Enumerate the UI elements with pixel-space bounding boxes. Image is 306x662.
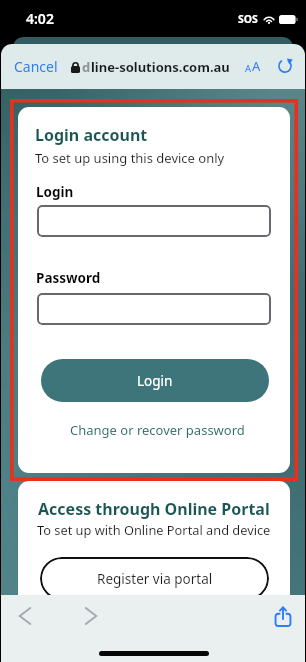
button[interactable]: Register via portal (40, 557, 269, 595)
staticText: 4:02 (26, 9, 54, 28)
staticText: Password (36, 269, 101, 287)
staticText: A (252, 57, 261, 75)
staticText: To set up using this device only (35, 149, 225, 167)
staticText: A (245, 62, 252, 75)
button[interactable]: Forward (72, 597, 110, 635)
staticText: Access through Online Portal (38, 498, 270, 520)
button[interactable]: Cancel (9, 52, 63, 80)
staticText: Cancel (14, 57, 58, 76)
button[interactable] (37, 205, 271, 237)
staticText: Login account (35, 124, 148, 146)
button[interactable]: Login (41, 359, 269, 402)
button[interactable]: Reload page (273, 54, 297, 78)
button[interactable] (37, 293, 271, 325)
staticText: Login (36, 183, 74, 201)
staticText: SOS (238, 12, 258, 26)
button[interactable]: Text size options (241, 54, 265, 78)
staticText: d (82, 58, 91, 76)
button[interactable]: Change or recover password (21, 418, 290, 442)
staticText: To set up with Online Portal and device (37, 521, 271, 538)
staticText: Change or recover password (70, 421, 245, 439)
button[interactable]: Back (6, 597, 44, 635)
staticText: Login (137, 372, 173, 390)
staticText: line-solutions.com.au (91, 58, 230, 76)
staticText: Register via portal (97, 570, 213, 588)
button[interactable]: Share (263, 597, 302, 636)
